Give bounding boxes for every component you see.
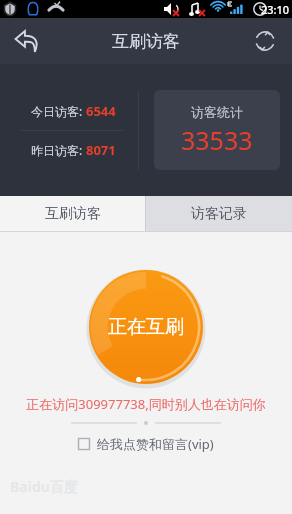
staticText: 给我点赞和留言(vip): [97, 435, 214, 453]
staticText: 23:10: [261, 2, 290, 17]
staticText: Baidu百度: [10, 477, 78, 496]
staticText: 33533: [181, 123, 253, 157]
staticText: 昨日访客:: [31, 142, 86, 158]
staticText: 今日访客:: [31, 103, 86, 119]
staticText: 互刷访客: [112, 31, 180, 52]
button[interactable]: 返回: [6, 20, 48, 62]
button[interactable]: 访客记录: [146, 196, 292, 231]
staticText: 8071: [86, 141, 116, 159]
button[interactable]: 访客统计: [154, 90, 280, 170]
staticText: 互刷访客: [45, 205, 101, 223]
staticText: 访客记录: [191, 205, 247, 223]
staticText: 访客统计: [191, 104, 243, 120]
button[interactable]: 给我点赞和留言(vip): [78, 435, 214, 453]
button[interactable]: 互刷访客: [0, 196, 145, 231]
button[interactable]: 正在互刷: [87, 268, 205, 386]
staticText: 正在访问309977738,同时别人也在访问你: [26, 395, 266, 413]
button[interactable]: 刷新: [244, 20, 286, 62]
staticText: 正在互刷: [108, 315, 184, 339]
staticText: 6544: [86, 102, 116, 120]
